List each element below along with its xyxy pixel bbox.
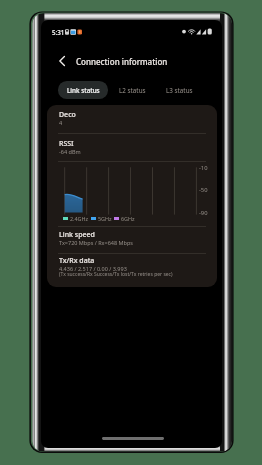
staticText: 4.436 / 2.517 / 0.00 / 3.993 [59,265,127,272]
button[interactable]: Back [51,50,73,72]
staticText: 6GHz [121,215,135,222]
button[interactable]: Link status [58,81,108,99]
staticText: Link status [67,86,100,95]
staticText: RSSI [59,139,74,149]
staticText: Tx/Rx data [59,256,95,266]
staticText: Tx=720 Mbps / Rx=648 Mbps [59,239,133,246]
staticText: -64 dBm [59,148,81,155]
staticText: -90 [199,209,208,217]
staticText: L2 status [119,86,146,95]
staticText: 5:31 [52,28,65,36]
staticText: -50 [199,186,208,194]
staticText: 2.4GHz [70,215,89,222]
button[interactable]: L2 status [109,81,156,99]
staticText: (Tx success/Rx Success/Tx lost/Tx retrie… [59,271,173,278]
staticText: -10 [199,164,208,172]
staticText: Connection information [76,56,168,67]
staticText: L3 status [166,86,193,95]
staticText: 4 [59,119,63,126]
button[interactable]: L3 status [156,81,203,99]
staticText: Link speed [59,230,95,240]
button[interactable]: Home [102,437,164,440]
staticText: 5GHz [98,215,112,222]
staticText: Deco [59,110,76,120]
